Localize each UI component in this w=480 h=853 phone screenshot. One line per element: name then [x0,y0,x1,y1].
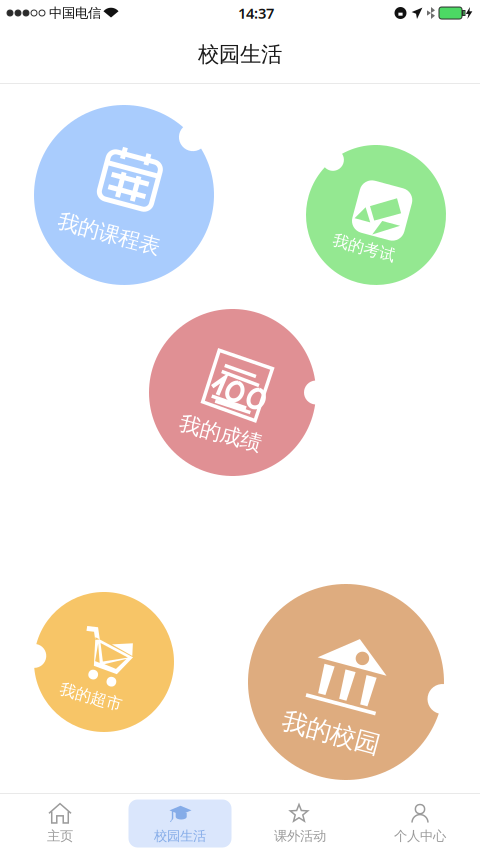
staticText: 课外活动 [274,828,326,844]
button[interactable]: 我的课程表 [34,105,214,285]
staticText: 14:37 [238,3,274,23]
button[interactable]: 个人中心 [360,799,480,847]
staticText: 我的考试 [332,238,396,258]
staticText: 主页 [47,828,73,844]
button[interactable]: 校园生活 [120,799,240,847]
staticText: 校园生活 [198,41,282,68]
button[interactable]: 我的考试 [306,145,446,285]
button[interactable]: 我的成绩 [149,309,316,476]
staticText: 中国电信 [45,5,101,21]
staticText [101,4,104,22]
button[interactable]: 我的校园 [248,584,444,780]
staticText: 我的校园 [281,717,381,748]
staticText: 个人中心 [394,828,446,844]
staticText: 校园生活 [154,828,206,844]
button[interactable]: 主页 [0,799,120,847]
button[interactable]: 课外活动 [240,799,360,847]
staticText: 我的成绩 [178,420,262,447]
staticText: 我的课程表 [56,221,161,247]
button[interactable]: 我的超市 [34,592,174,732]
staticText: 我的超市 [59,687,123,707]
